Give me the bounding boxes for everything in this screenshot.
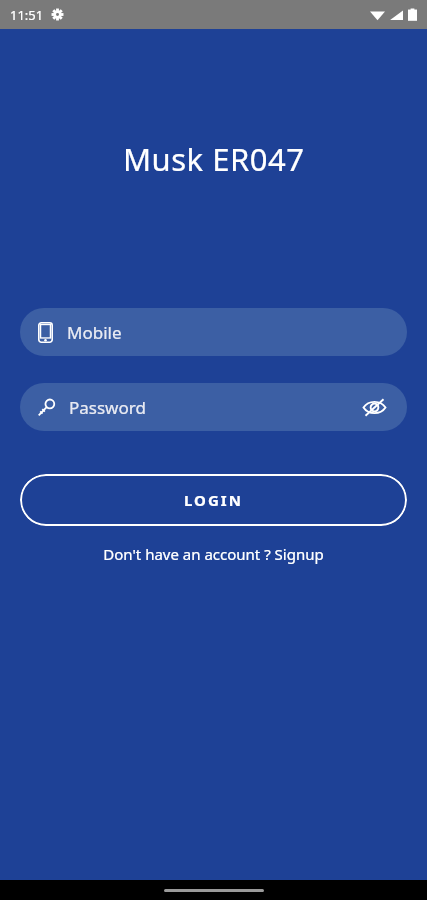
staticText: LOGIN	[184, 490, 243, 510]
button[interactable]: LOGIN	[20, 474, 407, 526]
button[interactable]: Password	[20, 383, 407, 431]
button[interactable]: Mobile	[20, 308, 407, 356]
staticText: 11:51	[10, 6, 44, 24]
staticText: Don't have an account ? Signup	[103, 544, 324, 564]
button[interactable]: Show password	[357, 390, 391, 424]
button[interactable]: Don't have an account ? Signup	[20, 542, 407, 566]
staticText: Password	[69, 396, 146, 419]
staticText: Musk ER047	[123, 138, 305, 180]
staticText: Mobile	[67, 321, 122, 344]
